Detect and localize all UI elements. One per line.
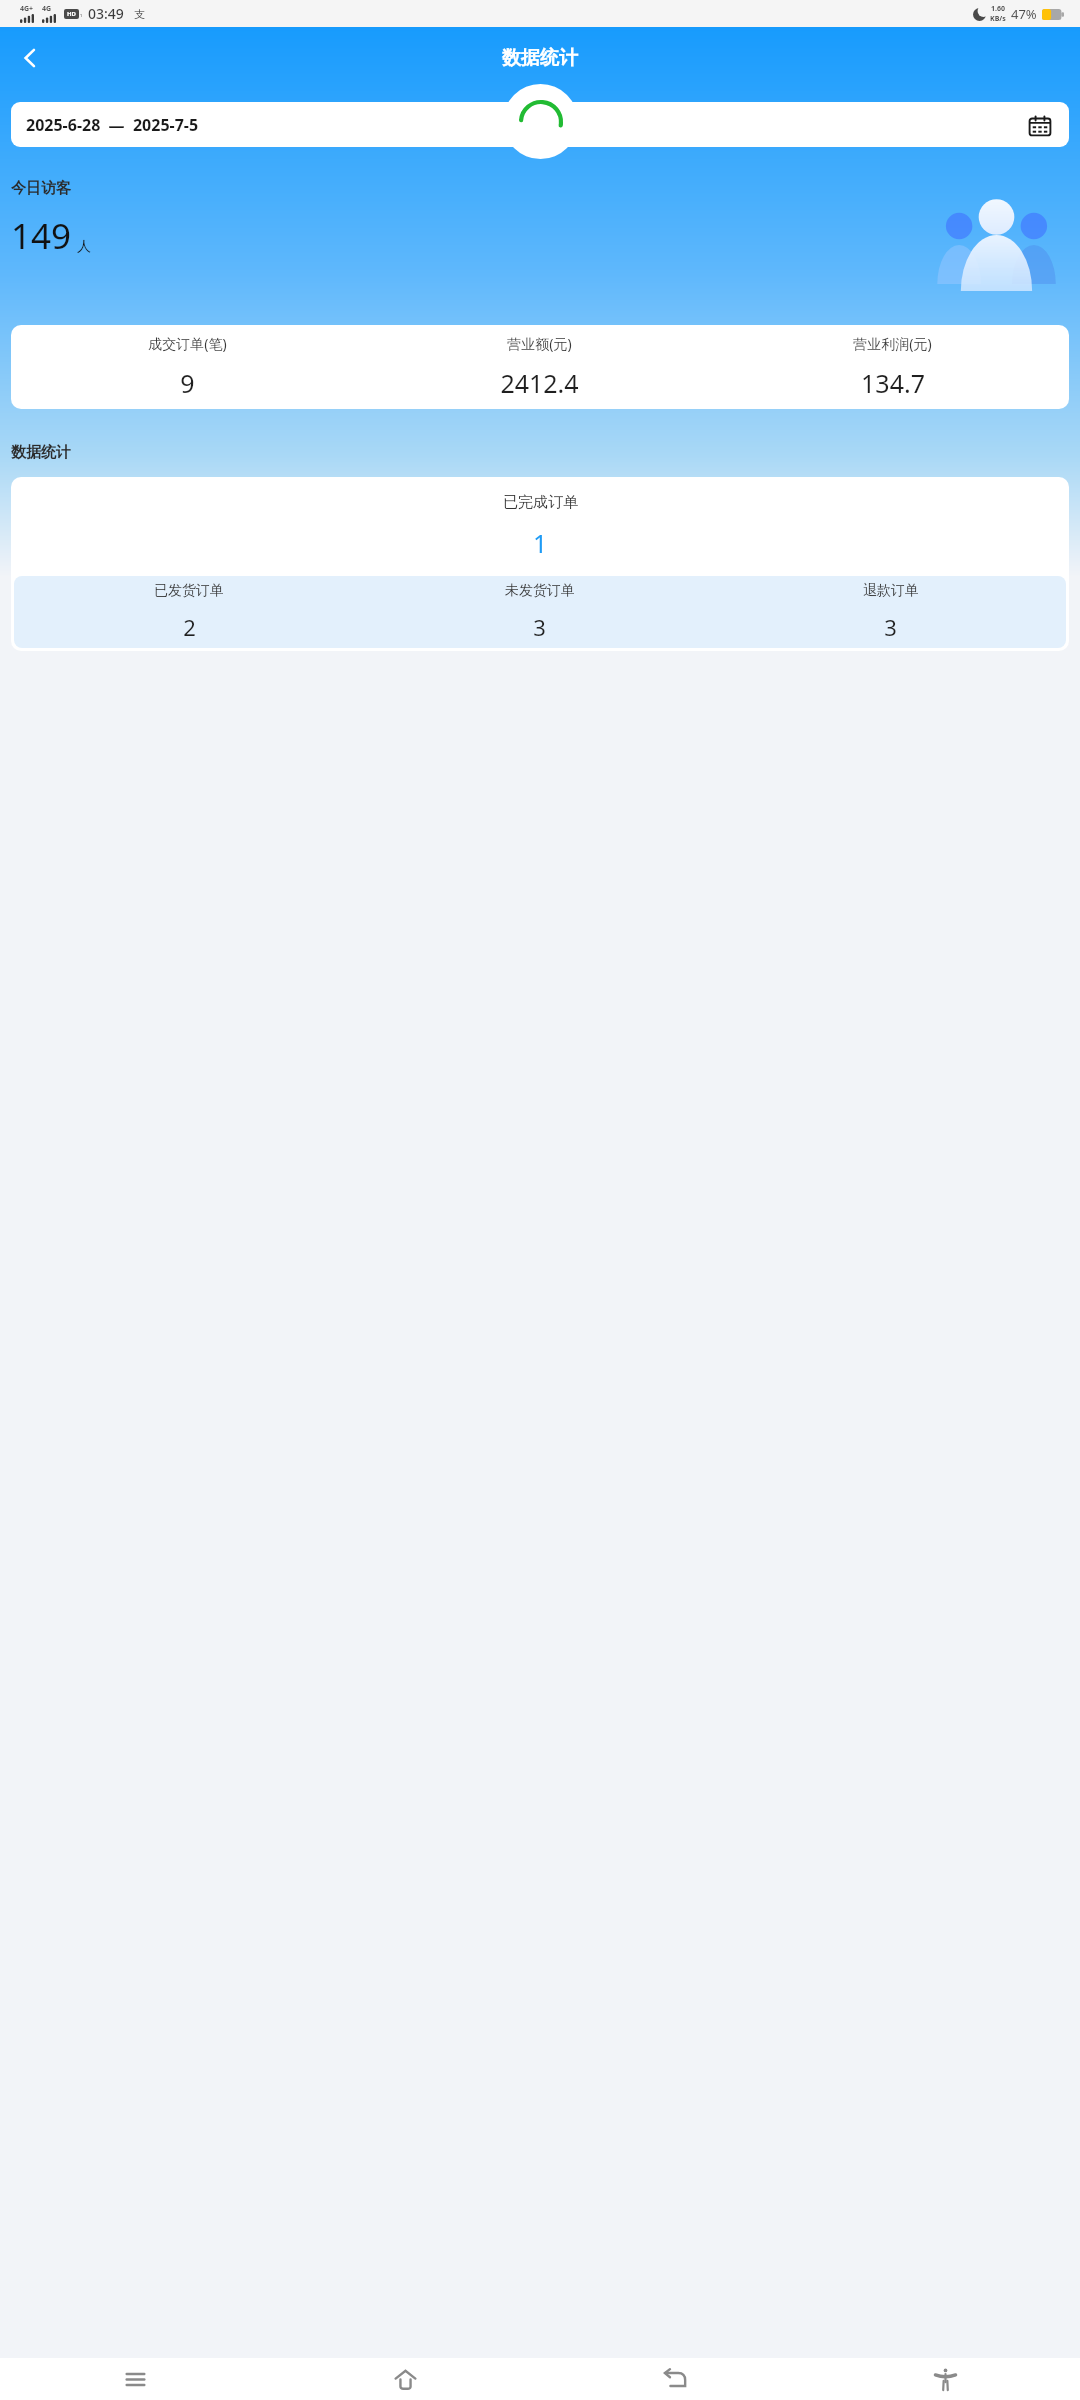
staticText: 2412.4 [500,366,579,400]
staticText: 4G+ [20,4,34,14]
other: Pick date range [1027,112,1053,138]
button[interactable]: 成交订单(笔) [11,325,363,409]
staticText: 134.7 [861,366,925,400]
staticText: 1.60 [991,4,1005,14]
staticText: 已发货订单 [154,582,224,600]
staticText: 已完成订单 [503,493,578,512]
staticText: 47% [1011,5,1037,23]
button[interactable]: 已完成订单 [11,477,1069,576]
button[interactable]: Accessibility [810,2358,1080,2400]
staticText: 4G [42,4,52,14]
staticText: 2025-6-28 — 2025-7-5 [26,114,199,136]
staticText: 今日访客 [11,179,71,198]
staticText: 数据统计 [11,443,71,462]
staticText: 营业利润(元) [853,334,932,353]
staticText: KB/s [990,14,1006,24]
button[interactable]: Back [6,34,54,82]
staticText: 2 [183,612,196,642]
staticText: 人 [77,238,91,256]
staticText: 营业额(元) [507,334,572,353]
button[interactable]: Menu [0,2358,270,2400]
staticText: 退款订单 [863,582,919,600]
staticText: ₁ [80,10,83,18]
button[interactable]: 未发货订单 [364,576,715,648]
button[interactable]: Back [540,2358,810,2400]
staticText: 成交订单(笔) [148,334,227,353]
staticText: 支 [134,7,145,21]
staticText: 149 [11,212,72,260]
button[interactable]: 退款订单 [715,576,1066,648]
button[interactable]: 营业利润(元) [716,325,1069,409]
staticText: 03:49 [88,4,124,23]
staticText: 数据统计 [502,46,578,70]
staticText: 3 [533,612,546,642]
button[interactable]: 已发货订单 [14,576,364,648]
staticText: 3 [884,612,897,642]
button[interactable]: 营业额(元) [363,325,716,409]
button[interactable]: 2025-6-28 — 2025-7-5 [11,102,1069,147]
staticText: 1 [533,526,548,560]
button[interactable]: Home [270,2358,540,2400]
staticText: HD [67,10,76,18]
staticText: 9 [180,366,195,400]
staticText: 未发货订单 [505,582,575,600]
